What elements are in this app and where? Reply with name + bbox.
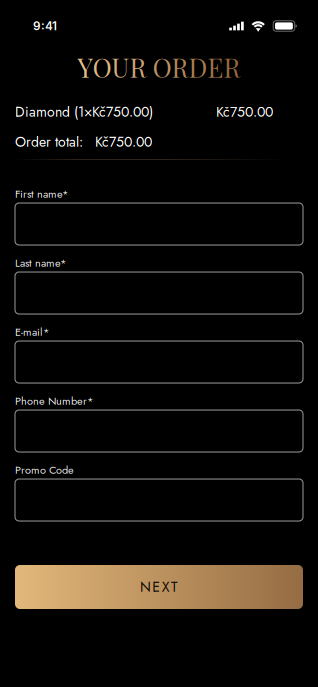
button[interactable]: First name* <box>15 203 303 245</box>
staticText: 9:41 <box>33 19 57 33</box>
button[interactable]: E-mail* <box>15 341 303 383</box>
staticText: Last name* <box>15 255 66 271</box>
staticText: Phone Number* <box>15 393 93 409</box>
staticText: Order total: Kč750.00 <box>15 132 152 152</box>
staticText: E-mail* <box>15 324 49 340</box>
button[interactable]: Promo Code <box>15 479 303 521</box>
staticText: Promo Code <box>15 462 74 478</box>
button[interactable]: NEXT <box>15 565 303 609</box>
staticText: Kč750.00 <box>216 102 273 122</box>
staticText: Diamond (1×Kč750.00) <box>15 102 153 122</box>
button[interactable]: Last name* <box>15 272 303 314</box>
button[interactable]: Phone Number* <box>15 410 303 452</box>
staticText: First name* <box>15 186 68 202</box>
staticText: YOUR ORDER <box>77 50 240 84</box>
staticText: NEXT <box>140 577 178 597</box>
